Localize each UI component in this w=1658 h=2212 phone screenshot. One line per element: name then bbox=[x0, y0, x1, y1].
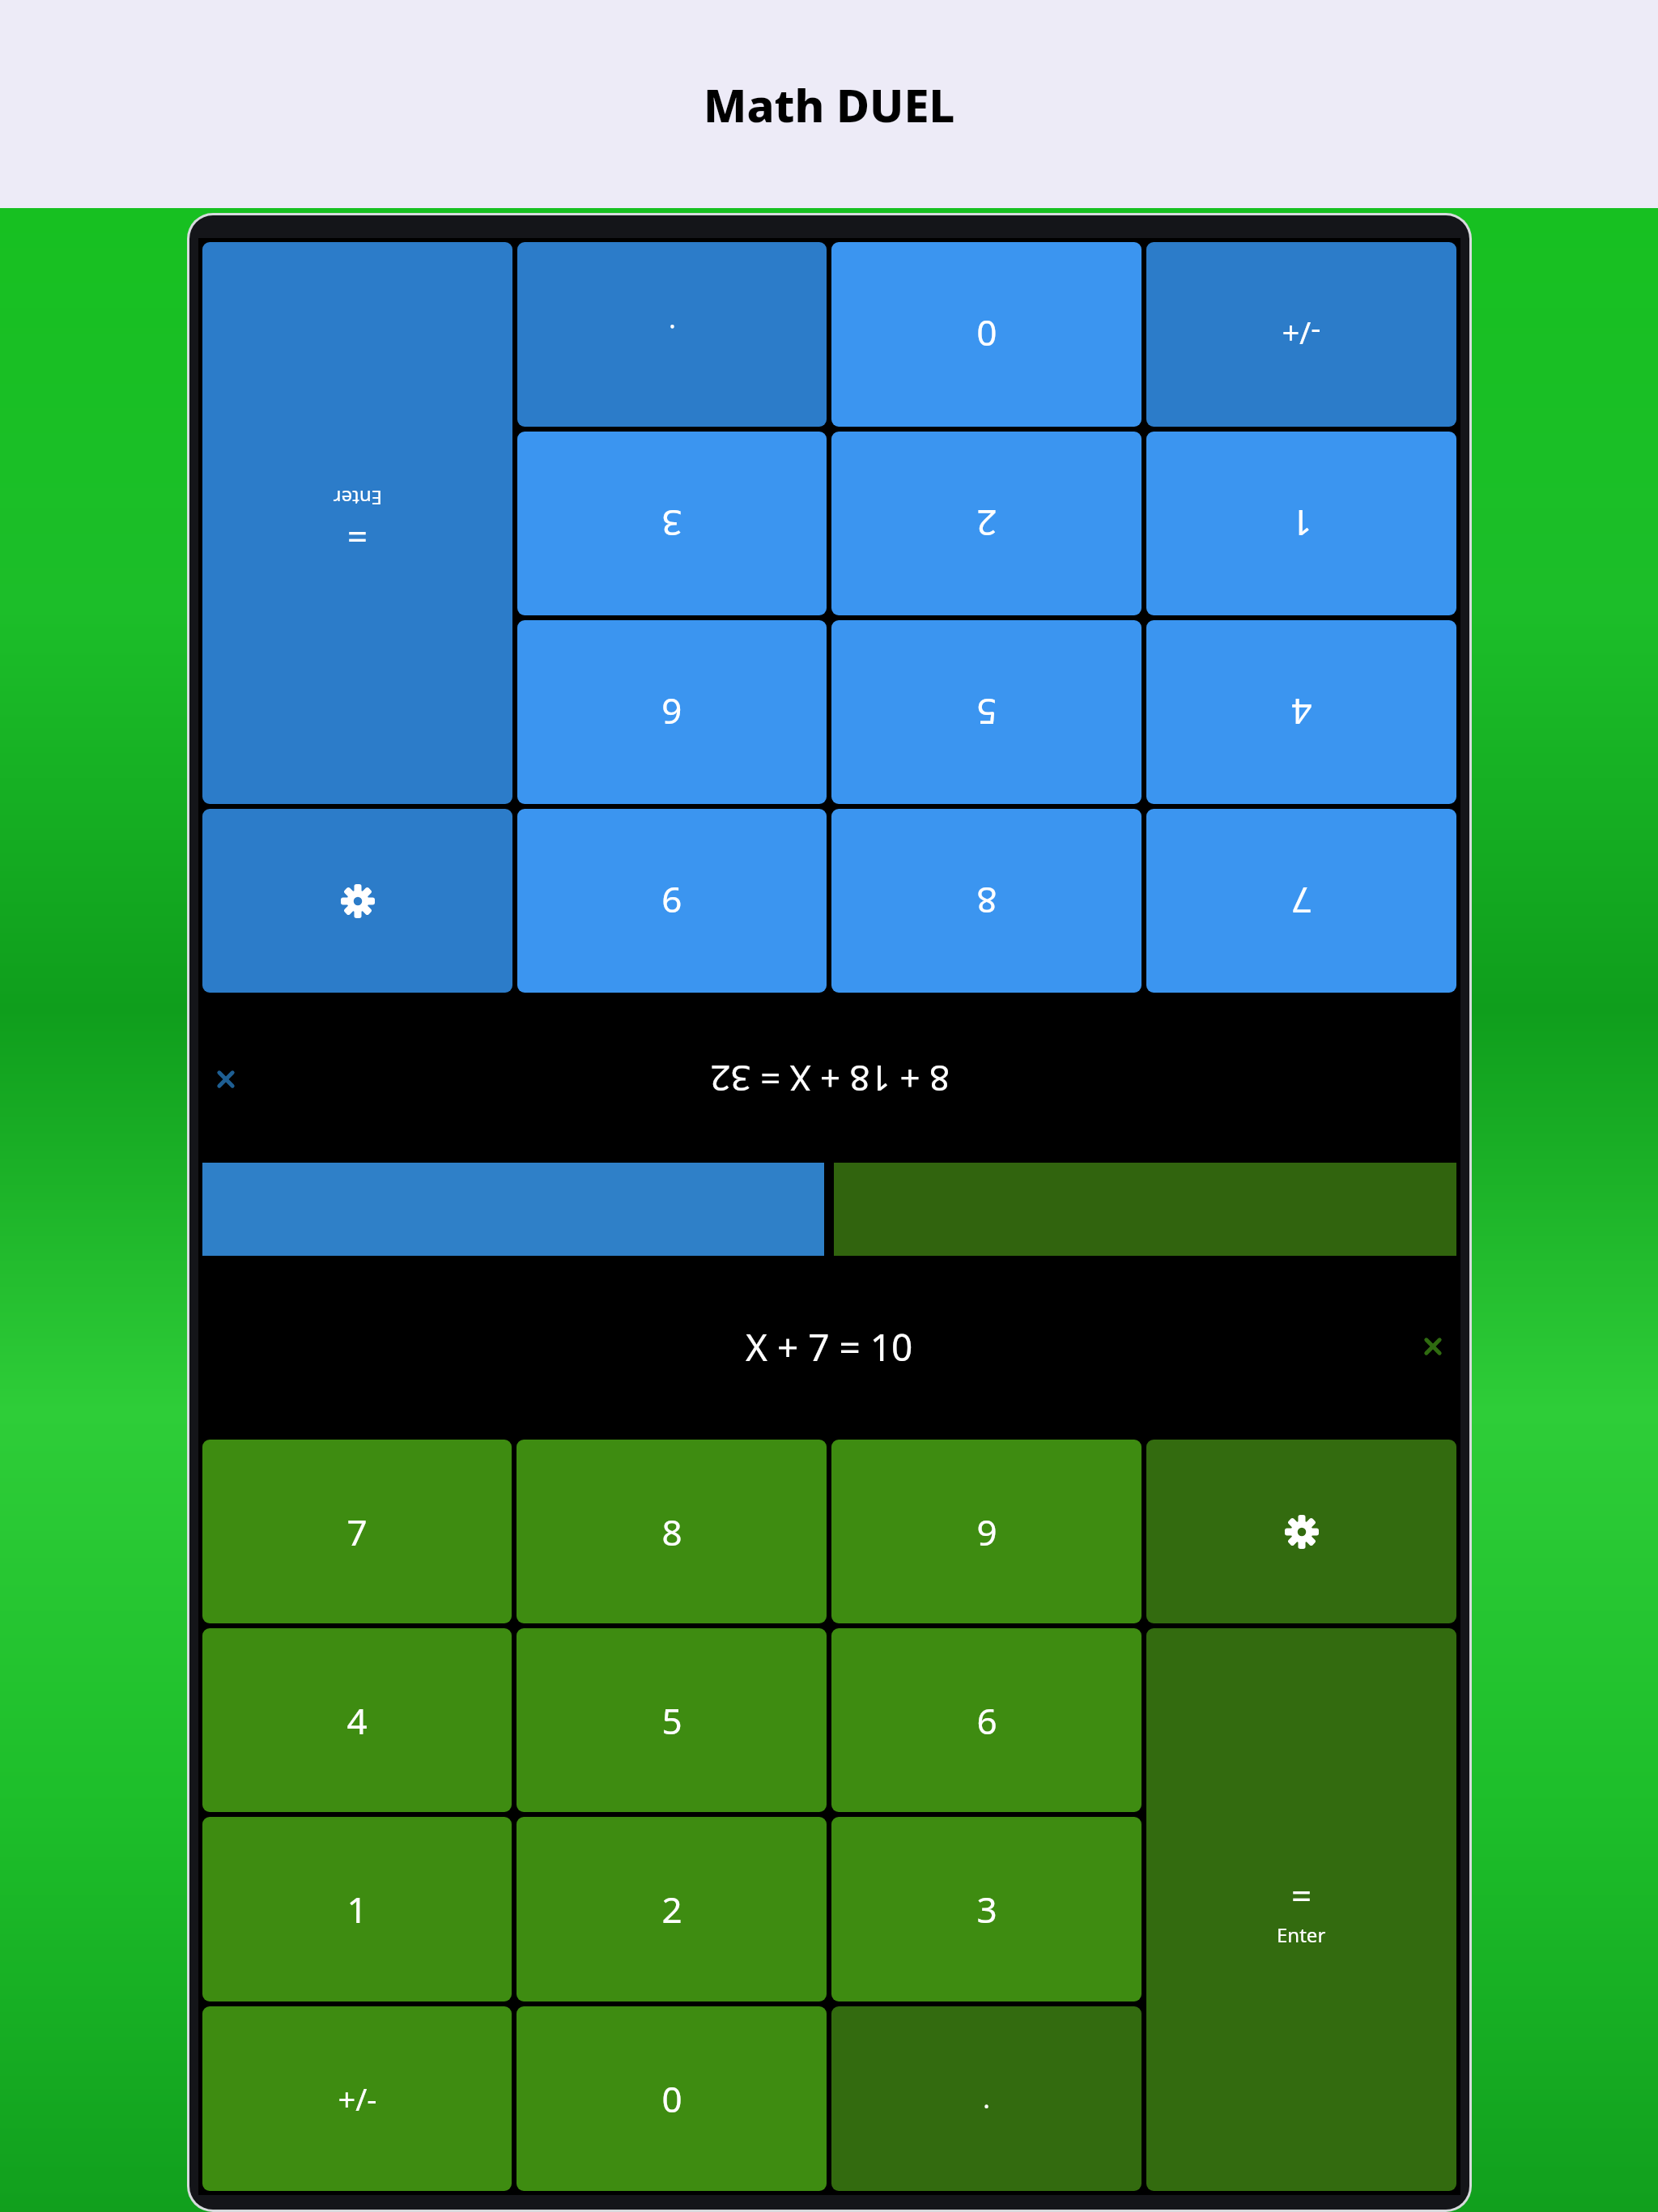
button[interactable]: 1 bbox=[202, 1817, 512, 2001]
staticText: 8 bbox=[976, 877, 997, 925]
button[interactable]: 2 bbox=[831, 432, 1141, 615]
button[interactable]: Enter player two bbox=[1146, 1628, 1456, 2191]
button[interactable]: 4 bbox=[1146, 620, 1456, 804]
staticText: 5 bbox=[661, 1696, 682, 1745]
button[interactable]: 5 bbox=[517, 1628, 827, 1812]
staticText: 8 + 18 + X = 32 bbox=[710, 1055, 950, 1104]
staticText: Math DUEL bbox=[704, 74, 955, 135]
staticText: 1 bbox=[1291, 500, 1312, 548]
button[interactable]: +/- bbox=[202, 2006, 512, 2191]
button[interactable]: 7 bbox=[1146, 809, 1456, 993]
staticText: X + 7 = 10 bbox=[746, 1321, 913, 1372]
button[interactable]: 3 bbox=[831, 1817, 1141, 2001]
button[interactable]: . bbox=[517, 242, 827, 427]
button[interactable]: 8 bbox=[831, 809, 1141, 993]
button[interactable]: 6 bbox=[517, 620, 827, 804]
button[interactable]: 6 bbox=[831, 1628, 1141, 1812]
staticText: 3 bbox=[661, 500, 682, 548]
staticText: 7 bbox=[346, 1508, 368, 1556]
staticText: +/- bbox=[338, 2078, 377, 2120]
button[interactable]: 4 bbox=[202, 1628, 512, 1812]
staticText: 2 bbox=[976, 500, 997, 548]
button[interactable]: 3 bbox=[517, 432, 827, 615]
staticText: 9 bbox=[976, 1508, 997, 1556]
staticText: 4 bbox=[346, 1696, 368, 1745]
button[interactable]: 5 bbox=[831, 620, 1141, 804]
staticText: Enter bbox=[1277, 1921, 1326, 1948]
button[interactable]: 8 bbox=[517, 1440, 827, 1623]
staticText: 4 bbox=[1291, 688, 1312, 737]
staticText: 5 bbox=[976, 688, 997, 737]
button[interactable]: Settings player two bbox=[1146, 1440, 1456, 1623]
button[interactable]: -/+ bbox=[1146, 242, 1456, 427]
staticText: -/+ bbox=[1282, 313, 1321, 355]
button[interactable]: . bbox=[831, 2006, 1141, 2191]
staticText: 3 bbox=[976, 1885, 997, 1933]
button[interactable]: 0 bbox=[831, 242, 1141, 427]
button[interactable]: 2 bbox=[517, 1817, 827, 2001]
staticText: 8 bbox=[661, 1508, 682, 1556]
button[interactable]: 1 bbox=[1146, 432, 1456, 615]
button[interactable]: 7 bbox=[202, 1440, 512, 1623]
staticText: 7 bbox=[1291, 877, 1312, 925]
staticText: = bbox=[346, 513, 368, 562]
staticText: 1 bbox=[346, 1885, 368, 1933]
staticText: 2 bbox=[661, 1885, 682, 1933]
staticText: 0 bbox=[976, 310, 997, 359]
staticText: 9 bbox=[661, 877, 682, 925]
staticText: 6 bbox=[976, 1696, 997, 1745]
button[interactable]: Enter player one bbox=[202, 242, 512, 804]
button[interactable]: Settings player one bbox=[202, 809, 512, 993]
staticText: = bbox=[1291, 1871, 1312, 1920]
staticText: Enter bbox=[333, 485, 382, 512]
staticText: . bbox=[983, 2081, 990, 2116]
button[interactable]: 0 bbox=[517, 2006, 827, 2191]
button[interactable]: 9 bbox=[831, 1440, 1141, 1623]
staticText: 6 bbox=[661, 688, 682, 737]
button[interactable]: 9 bbox=[517, 809, 827, 993]
staticText: 0 bbox=[661, 2074, 682, 2123]
staticText: . bbox=[669, 317, 676, 352]
